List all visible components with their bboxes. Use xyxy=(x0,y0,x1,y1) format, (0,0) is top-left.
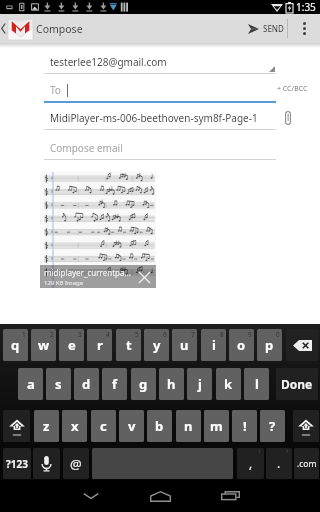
staticText: i xyxy=(212,336,216,354)
button[interactable]: Shift xyxy=(3,410,30,442)
button[interactable]: r xyxy=(87,329,112,361)
button[interactable]: midiplayer_currentpa... xyxy=(40,172,156,288)
button[interactable]: More options xyxy=(288,14,320,43)
button[interactable]: a xyxy=(18,368,43,400)
staticText: ? xyxy=(286,449,289,456)
button[interactable]: l xyxy=(244,368,269,400)
button[interactable]: ? xyxy=(260,410,285,442)
staticText: Compose xyxy=(36,22,83,36)
button[interactable]: p xyxy=(257,329,282,361)
staticText: d xyxy=(82,375,91,393)
button[interactable]: t xyxy=(116,329,141,361)
button[interactable]: testerlee128@gmail.com xyxy=(0,50,320,74)
staticText: w xyxy=(38,336,50,354)
staticText: 9 xyxy=(248,330,252,339)
button[interactable]: f xyxy=(102,368,127,400)
button[interactable]: , xyxy=(237,448,264,479)
button[interactable]: k xyxy=(216,368,241,400)
button[interactable]: Shift xyxy=(293,410,319,442)
button[interactable]: ?123 xyxy=(3,448,31,479)
button[interactable]: q xyxy=(3,329,28,361)
staticText: , xyxy=(249,455,253,471)
staticText: z xyxy=(43,417,50,435)
staticText: u xyxy=(180,336,189,354)
button[interactable]: @ xyxy=(63,448,89,479)
staticText: MidiPlayer-ms-006-beethoven-sym8f-Page-1 xyxy=(50,111,258,125)
staticText: SEND xyxy=(263,23,284,34)
button[interactable]: Recent apps xyxy=(210,481,250,511)
button[interactable]: Voice input xyxy=(33,448,60,479)
button[interactable]: Back xyxy=(71,481,111,511)
staticText: 4 xyxy=(106,330,110,339)
staticText: b xyxy=(155,417,164,435)
staticText: ! xyxy=(243,417,247,435)
staticText: 1 xyxy=(22,330,26,339)
staticText: ? xyxy=(269,417,276,435)
staticText: j xyxy=(198,375,202,393)
staticText: g xyxy=(139,375,148,393)
button[interactable]: g xyxy=(131,368,156,400)
button[interactable]: z xyxy=(34,410,59,442)
staticText: To xyxy=(50,83,61,97)
staticText: Compose email xyxy=(50,141,123,155)
button[interactable]: MidiPlayer-ms-006-beethoven-sym8f-Page-1 xyxy=(0,106,320,130)
button[interactable]: n xyxy=(176,410,201,442)
staticText: 5 xyxy=(135,330,139,339)
button[interactable]: j xyxy=(187,368,212,400)
staticText: y xyxy=(153,336,161,354)
button[interactable]: i xyxy=(201,329,226,361)
staticText: v xyxy=(128,417,136,435)
button[interactable]: Navigate up xyxy=(0,14,87,43)
button[interactable]: m xyxy=(204,410,229,442)
staticText: 6 xyxy=(163,330,167,339)
button[interactable]: u xyxy=(172,329,197,361)
button[interactable]: To xyxy=(0,78,320,102)
button[interactable]: v xyxy=(119,410,144,442)
staticText: midiplayer_currentpa... xyxy=(44,267,131,278)
button[interactable]: d xyxy=(74,368,99,400)
button[interactable]: Compose email xyxy=(0,136,320,160)
button[interactable]: c xyxy=(91,410,116,442)
staticText: 129 KB Image xyxy=(44,279,84,287)
staticText: Done xyxy=(281,376,313,392)
staticText: t xyxy=(126,336,132,354)
button[interactable]: s xyxy=(46,368,71,400)
staticText: 0 xyxy=(276,330,280,339)
staticText: @ xyxy=(70,455,82,473)
staticText: r xyxy=(97,336,103,354)
button[interactable]: Backspace xyxy=(286,329,318,361)
staticText: k xyxy=(224,375,233,393)
button[interactable]: h xyxy=(159,368,184,400)
staticText: ?123 xyxy=(6,457,28,471)
button[interactable]: . xyxy=(266,448,292,479)
button[interactable]: .com xyxy=(294,448,319,479)
staticText: o xyxy=(237,336,246,354)
button[interactable]: SEND xyxy=(238,14,287,43)
staticText: e xyxy=(68,336,76,354)
staticText: ! xyxy=(259,449,261,456)
staticText: a xyxy=(27,375,35,393)
button[interactable]: Attach file xyxy=(278,108,298,128)
staticText: q xyxy=(11,336,20,354)
staticText: s xyxy=(55,375,62,393)
staticText: + CC/BCC xyxy=(277,84,308,94)
staticText: testerlee128@gmail.com xyxy=(50,55,167,69)
button[interactable]: y xyxy=(144,329,169,361)
button[interactable]: Home xyxy=(140,481,180,511)
button[interactable]: Remove attachment xyxy=(135,268,153,286)
button[interactable]: o xyxy=(229,329,254,361)
staticText: 8 xyxy=(220,330,224,339)
staticText: x xyxy=(71,417,79,435)
button[interactable]: b xyxy=(147,410,172,442)
staticText: .com xyxy=(297,458,317,470)
staticText: 7 xyxy=(191,330,195,339)
button[interactable]: x xyxy=(62,410,87,442)
staticText: 2 xyxy=(50,330,54,339)
button[interactable]: e xyxy=(59,329,84,361)
staticText: h xyxy=(167,375,176,393)
button[interactable]: w xyxy=(31,329,56,361)
staticText: 1:35 xyxy=(296,0,316,14)
button[interactable]: Done xyxy=(276,368,318,400)
button[interactable]: ! xyxy=(232,410,257,442)
